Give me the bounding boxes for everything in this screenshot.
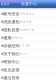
staticText: 隐私设置 xyxy=(4,27,20,32)
button[interactable]: 存储空间 xyxy=(0,42,56,50)
staticText: 全部开启 xyxy=(20,20,32,23)
button[interactable]: 返回 xyxy=(0,0,10,8)
staticText: 存储空间 xyxy=(4,43,20,48)
staticText: v8.2.1 xyxy=(20,52,29,55)
button[interactable]: 通用 xyxy=(0,34,56,42)
staticText: 设置中心 xyxy=(21,1,37,6)
staticText: 1.2 GB xyxy=(20,44,30,47)
staticText: 已完成认证 xyxy=(20,12,35,15)
button[interactable]: 隐私设置 xyxy=(0,26,56,34)
staticText: 简体中文 xyxy=(12,36,24,39)
staticText: 帮助中心 xyxy=(4,59,20,64)
staticText: 返回 xyxy=(3,2,9,6)
button[interactable]: 意见反馈 xyxy=(0,66,56,74)
staticText: 消息通知 xyxy=(4,19,20,24)
staticText: 通用 xyxy=(4,35,12,40)
button[interactable]: 关于我们 xyxy=(0,50,56,58)
staticText: 账号安全 xyxy=(4,11,20,16)
button[interactable]: 退出登录 xyxy=(0,74,56,80)
button[interactable]: 账号安全 xyxy=(0,10,56,18)
button[interactable]: 消息通知 xyxy=(0,18,56,26)
staticText: 关于我们 xyxy=(4,51,20,56)
staticText: 仅好友可见 xyxy=(20,28,35,31)
staticText: 退出登录 xyxy=(4,75,20,80)
button[interactable]: 帮助中心 xyxy=(0,58,56,66)
staticText: 意见反馈 xyxy=(4,67,20,72)
